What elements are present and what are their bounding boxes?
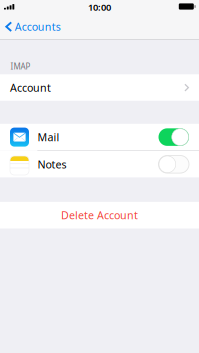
- staticText: 10:00: [88, 1, 111, 13]
- staticText: Accounts: [15, 20, 61, 34]
- staticText: IMAP: [10, 61, 30, 72]
- button[interactable]: Mail: [158, 128, 189, 146]
- button[interactable]: Accounts: [0, 16, 67, 38]
- button[interactable]: Account: [0, 74, 199, 101]
- staticText: Notes: [37, 157, 66, 171]
- button[interactable]: Notes: [158, 155, 189, 173]
- staticText: Account: [10, 80, 51, 95]
- staticText: Mail: [37, 130, 59, 144]
- button[interactable]: Delete Account: [0, 202, 199, 228]
- staticText: Delete Account: [61, 208, 138, 222]
